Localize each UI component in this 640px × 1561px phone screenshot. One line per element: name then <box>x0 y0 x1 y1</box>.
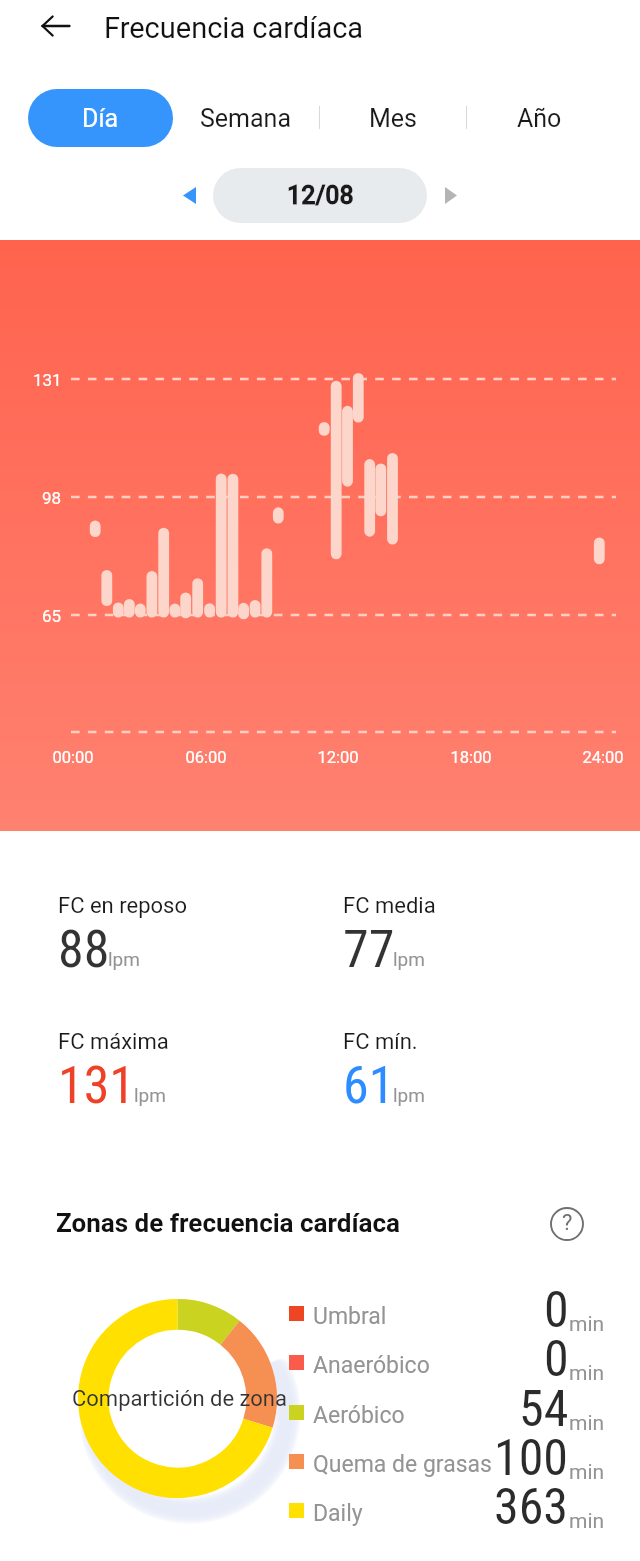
staticText: Umbral <box>313 1303 387 1330</box>
staticText: Quema de grasas <box>313 1451 492 1478</box>
staticText: 77 <box>343 919 395 980</box>
button[interactable]: Mes <box>320 89 465 147</box>
staticText: 54 <box>519 1380 569 1439</box>
staticText: Semana <box>200 104 292 133</box>
staticText: Daily <box>313 1500 363 1527</box>
staticText: 0 <box>544 1330 569 1389</box>
staticText: Compartición de zona <box>72 1386 287 1412</box>
staticText: 98 <box>42 488 62 508</box>
staticText: Aeróbico <box>313 1402 405 1429</box>
staticText: Zonas de frecuencia cardíaca <box>56 1208 401 1238</box>
staticText: 131 <box>33 370 62 390</box>
staticText: 0 <box>544 1281 569 1340</box>
staticText: 06:00 <box>166 748 246 767</box>
staticText: 88 <box>58 919 110 980</box>
staticText: 18:00 <box>431 748 511 767</box>
staticText: FC máxima <box>58 1029 169 1055</box>
staticText: min <box>569 1509 605 1534</box>
staticText: 12:00 <box>298 748 378 767</box>
staticText: 12/08 <box>287 181 354 210</box>
staticText: ? <box>562 1210 573 1236</box>
button[interactable]: Año <box>467 89 612 147</box>
staticText: min <box>569 1361 605 1386</box>
staticText: 131 <box>58 1055 136 1116</box>
staticText: Anaeróbico <box>313 1352 430 1379</box>
staticText: FC en reposo <box>58 893 187 919</box>
button[interactable]: Next day <box>433 177 469 213</box>
button[interactable]: Help <box>541 1198 593 1250</box>
staticText: min <box>569 1411 605 1436</box>
staticText: Año <box>517 104 562 133</box>
staticText: FC media <box>343 893 436 919</box>
button[interactable]: 12/08 <box>213 168 427 223</box>
staticText: lpm <box>393 1084 425 1106</box>
staticText: 00:00 <box>33 748 113 767</box>
staticText: min <box>569 1312 605 1337</box>
staticText: Frecuencia cardíaca <box>104 11 364 45</box>
staticText: 100 <box>494 1429 569 1488</box>
staticText: lpm <box>108 948 140 970</box>
staticText: 61 <box>343 1055 395 1116</box>
staticText: lpm <box>134 1084 166 1106</box>
staticText: lpm <box>393 948 425 970</box>
button[interactable]: Día <box>28 89 173 147</box>
button[interactable]: Back <box>28 0 84 52</box>
button[interactable]: Previous day <box>171 177 207 213</box>
staticText: FC mín. <box>343 1029 418 1055</box>
staticText: 24:00 <box>563 748 640 767</box>
staticText: 65 <box>42 606 62 626</box>
staticText: min <box>569 1460 605 1485</box>
staticText: 363 <box>494 1478 569 1537</box>
staticText: Mes <box>369 104 417 133</box>
button[interactable]: Semana <box>173 89 318 147</box>
staticText: Día <box>82 104 119 133</box>
